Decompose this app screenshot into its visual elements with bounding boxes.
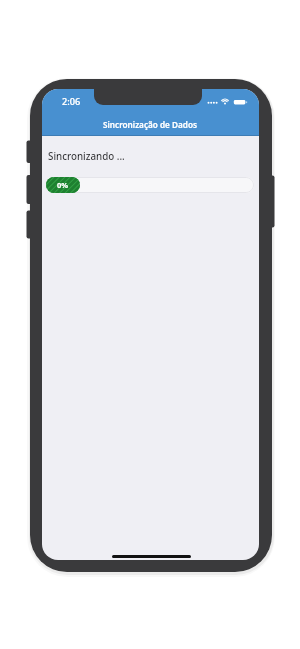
- staticText: Sincronização de Dados: [103, 119, 198, 130]
- staticText: 2:06: [62, 95, 81, 107]
- staticText: 0%: [57, 180, 69, 190]
- staticText: Sincronizando ...: [48, 150, 125, 163]
